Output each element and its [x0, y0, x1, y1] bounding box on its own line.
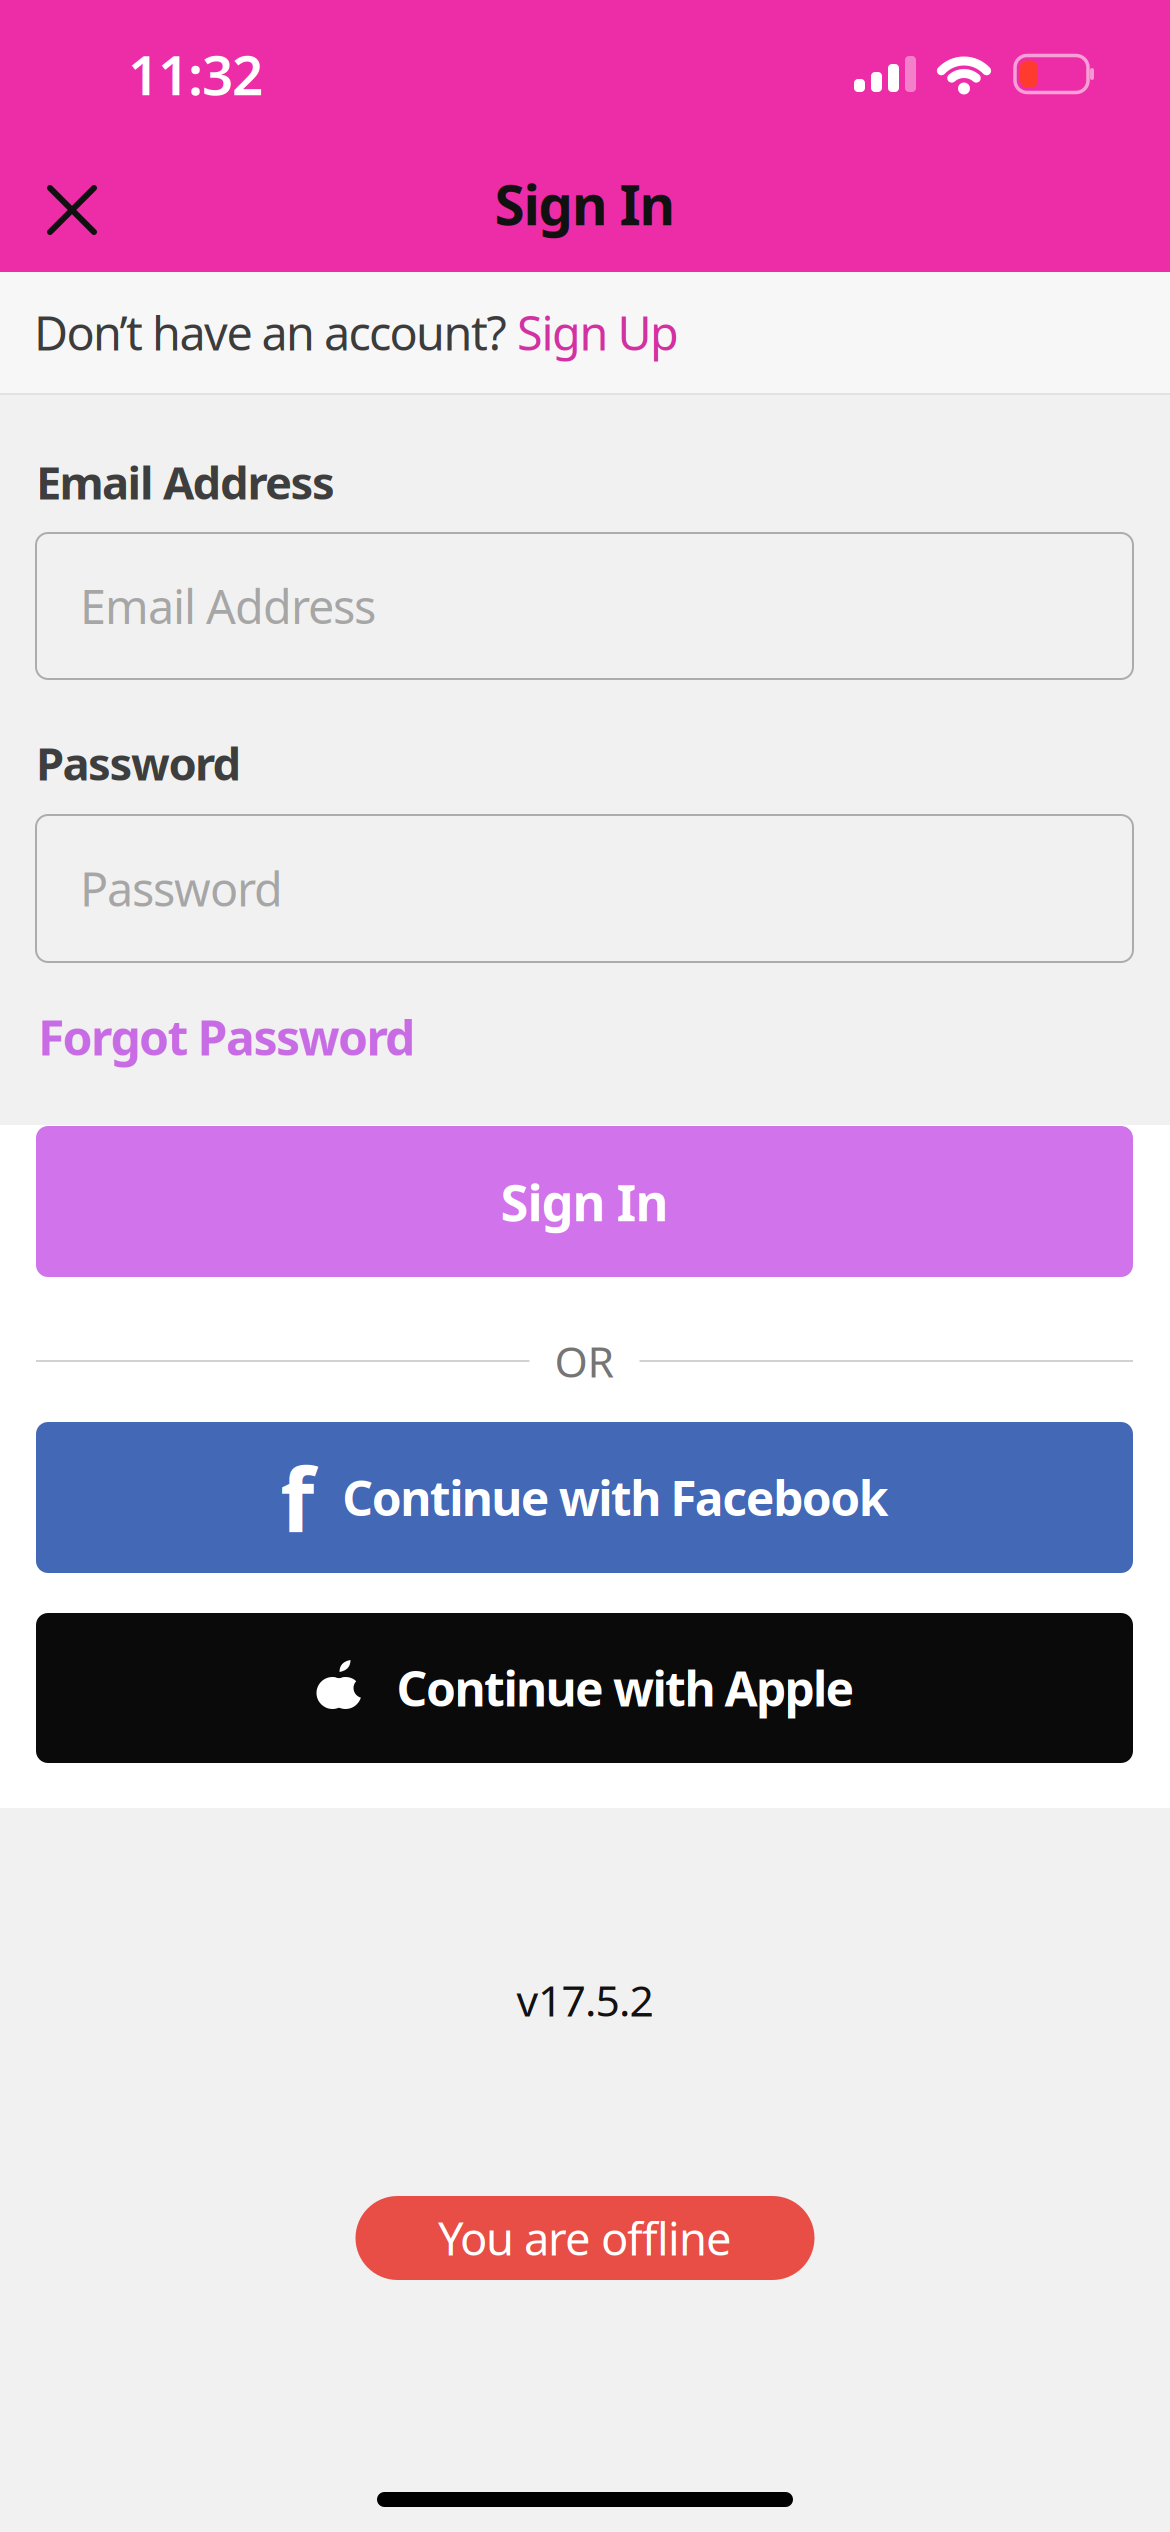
staticText: Sign Up: [517, 301, 679, 363]
staticText: Sign In: [500, 1168, 668, 1235]
button[interactable]: Password: [36, 815, 1133, 962]
staticText: Don’t have an account?: [34, 301, 517, 363]
staticText: You are offline: [438, 2208, 732, 2268]
staticText: Sign In: [495, 168, 675, 240]
staticText: Email Address: [80, 575, 376, 637]
staticText: Continue with Apple: [396, 1656, 854, 1720]
button[interactable]: Sign In: [36, 1126, 1133, 1277]
button[interactable]: Close: [0, 185, 97, 235]
staticText: OR: [554, 1333, 614, 1389]
staticText: v17.5.2: [516, 1972, 653, 2028]
button[interactable]: Forgot Password: [36, 1007, 415, 1067]
staticText: Forgot Password: [38, 1005, 415, 1069]
button[interactable]: f: [36, 1422, 1133, 1573]
button[interactable]: Email Address: [36, 533, 1133, 679]
staticText: f: [280, 1439, 314, 1556]
staticText: Password: [80, 857, 283, 919]
staticText: Continue with Facebook: [342, 1466, 889, 1529]
button[interactable]: Continue with Apple: [36, 1613, 1133, 1763]
staticText: Email Address: [36, 452, 335, 512]
staticText: 11:32: [128, 38, 263, 110]
button[interactable]: Sign Up: [517, 301, 679, 363]
staticText: Password: [36, 733, 241, 793]
